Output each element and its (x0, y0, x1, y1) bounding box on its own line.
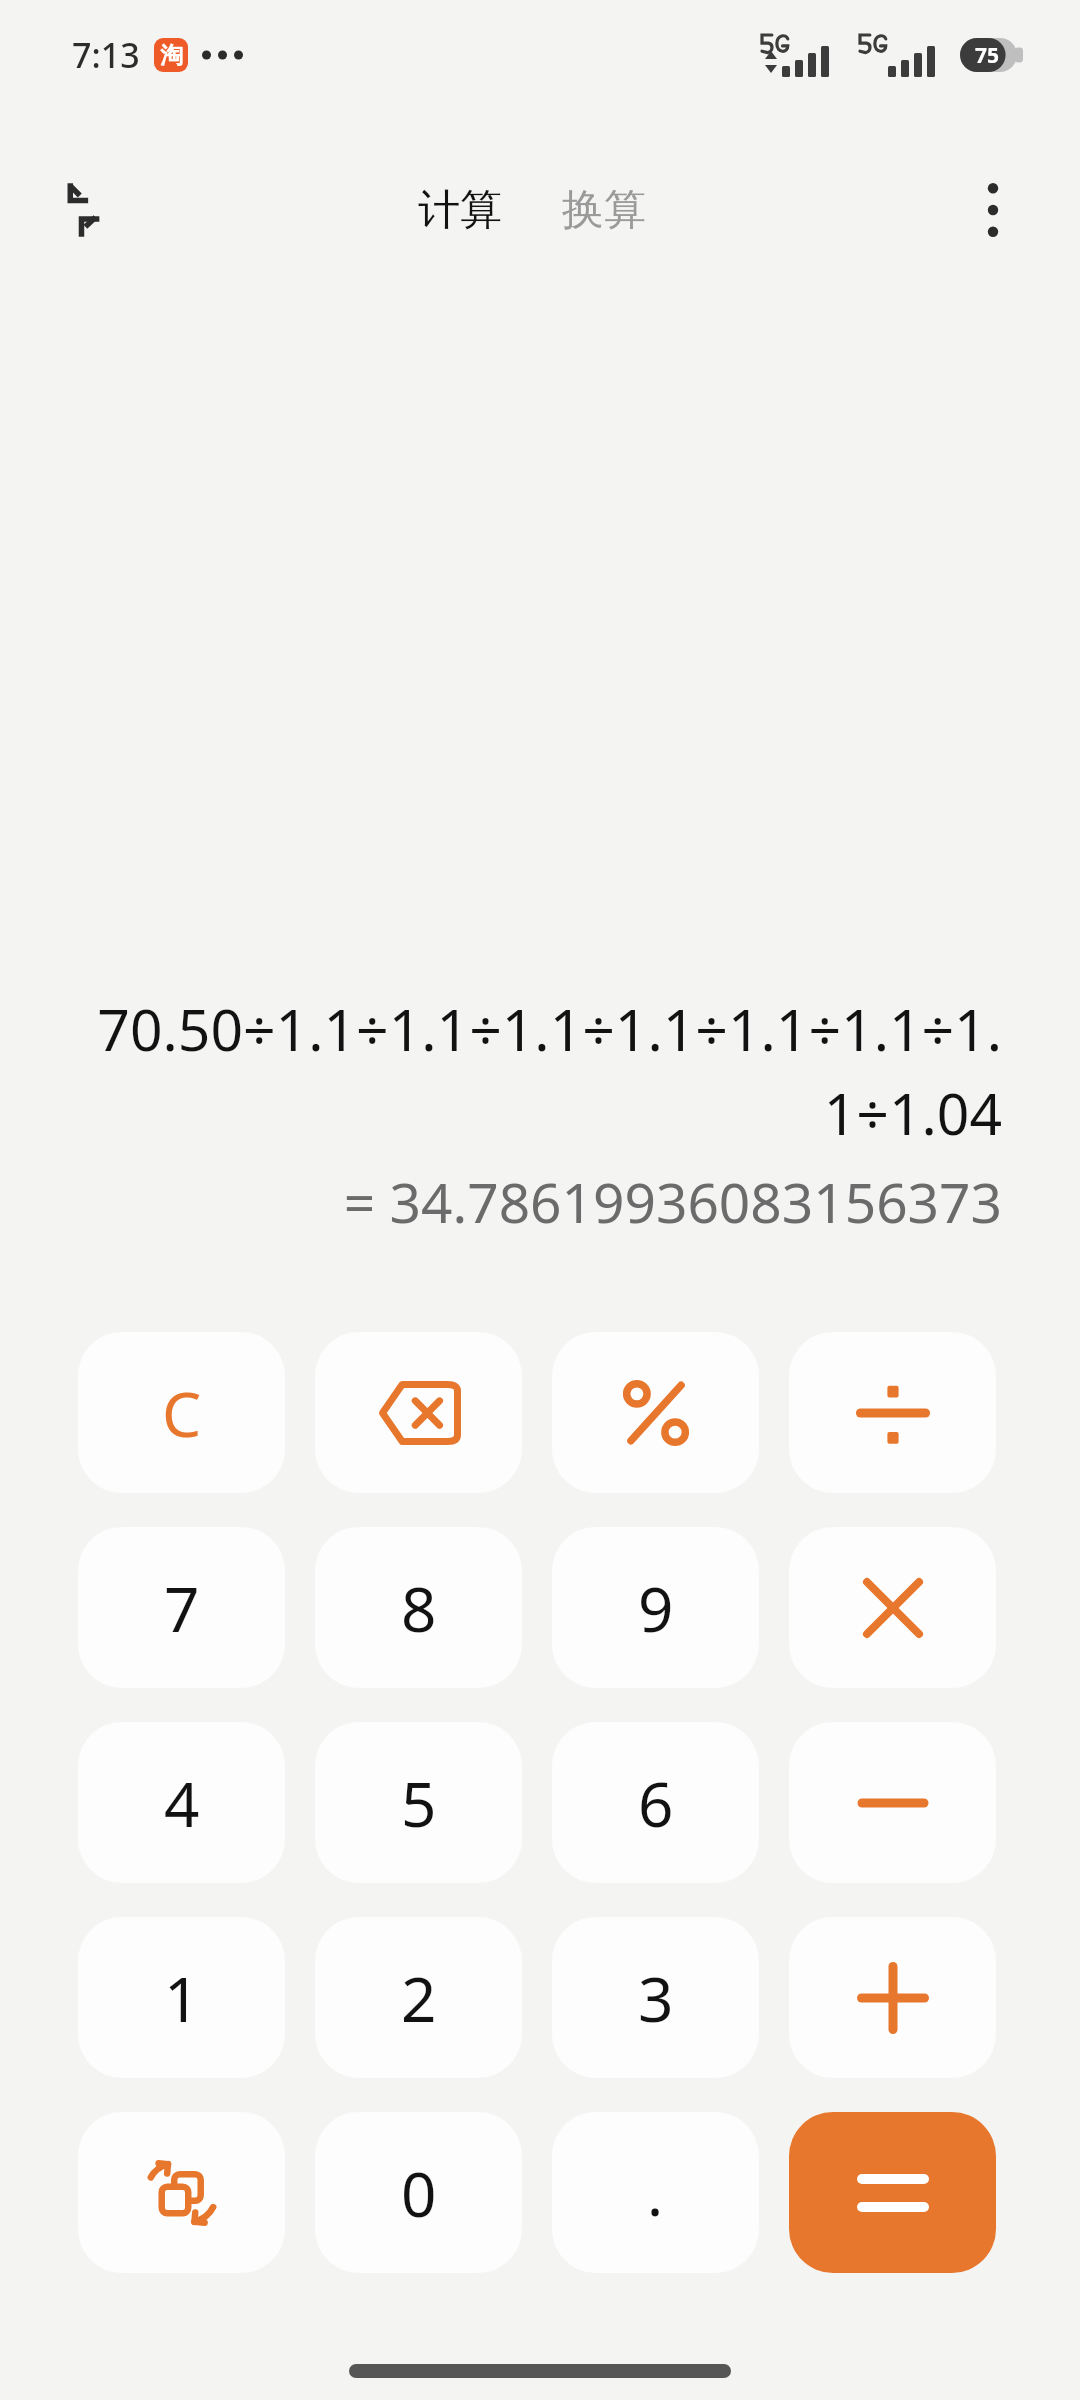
button[interactable]: More options (950, 167, 1036, 253)
button[interactable]: 5 (315, 1722, 522, 1883)
button[interactable]: 1 (78, 1917, 285, 2078)
button[interactable]: 0 (315, 2112, 522, 2273)
staticText: 7:13 (72, 32, 140, 78)
staticText: 6 (638, 1761, 674, 1845)
button[interactable]: . (552, 2112, 759, 2273)
button[interactable]: 3 (552, 1917, 759, 2078)
staticText: 1 (164, 1956, 200, 2040)
button[interactable]: 9 (552, 1527, 759, 1688)
button[interactable]: 6 (552, 1722, 759, 1883)
staticText: 4 (164, 1761, 200, 1845)
button[interactable]: 7 (78, 1527, 285, 1688)
button[interactable]: Minus (789, 1722, 996, 1883)
button[interactable]: Divide (789, 1332, 996, 1493)
staticText: 计算 (418, 184, 502, 237)
staticText: 3 (638, 1956, 674, 2040)
staticText: 75 (975, 41, 1000, 70)
button[interactable]: 计算 (408, 178, 512, 243)
button[interactable]: Plus (789, 1917, 996, 2078)
button[interactable]: 2 (315, 1917, 522, 2078)
staticText: 2 (401, 1956, 437, 2040)
staticText: C (162, 1371, 202, 1455)
button[interactable]: Unit conversion (78, 2112, 285, 2273)
staticText: 70.50÷1.1÷1.1÷1.1÷1.1÷1.1÷1.1÷1.1÷1.04 (78, 990, 1002, 1152)
button[interactable]: C (78, 1332, 285, 1493)
button[interactable]: 换算 (552, 178, 656, 243)
staticText: . (647, 2152, 664, 2234)
button[interactable]: 8 (315, 1527, 522, 1688)
staticText: 0 (401, 2151, 437, 2235)
button[interactable]: Collapse (48, 167, 134, 253)
button[interactable]: Multiply (789, 1527, 996, 1688)
staticText: 淘 (160, 41, 183, 70)
staticText: 9 (638, 1566, 674, 1650)
button[interactable]: Equals (789, 2112, 996, 2273)
staticText: 换算 (562, 184, 646, 237)
button[interactable]: 4 (78, 1722, 285, 1883)
button[interactable]: Backspace (315, 1332, 522, 1493)
staticText: 8 (401, 1566, 437, 1650)
staticText: 7 (164, 1566, 200, 1650)
staticText: = 34.78619936083156373 (78, 1164, 1002, 1239)
staticText: 5 (401, 1761, 437, 1845)
button[interactable]: Percent (552, 1332, 759, 1493)
